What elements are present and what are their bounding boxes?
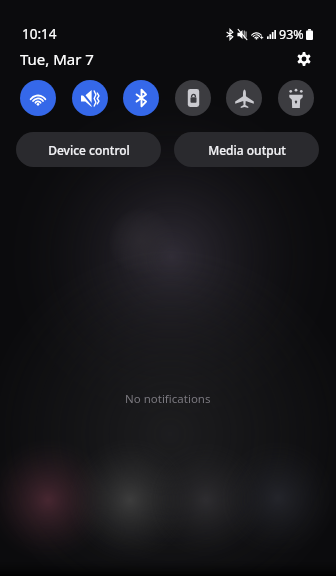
button[interactable]: Airplane mode [226, 80, 262, 116]
staticText: 10:14 [22, 25, 57, 43]
button[interactable]: Wi-Fi [20, 80, 56, 116]
button[interactable]: Bluetooth [123, 80, 159, 116]
button[interactable]: Mute [72, 80, 108, 116]
staticText: Tue, Mar 7 [20, 49, 94, 69]
staticText: Media output [208, 142, 286, 158]
staticText: Device control [48, 142, 130, 158]
button[interactable]: Flashlight [278, 80, 314, 116]
staticText: 93% [279, 26, 304, 43]
staticText: No notifications [125, 391, 211, 407]
button[interactable]: Settings [294, 49, 314, 69]
button[interactable]: Media output [174, 132, 319, 167]
button[interactable]: Device control [16, 132, 161, 167]
button[interactable]: Auto rotate [175, 80, 211, 116]
